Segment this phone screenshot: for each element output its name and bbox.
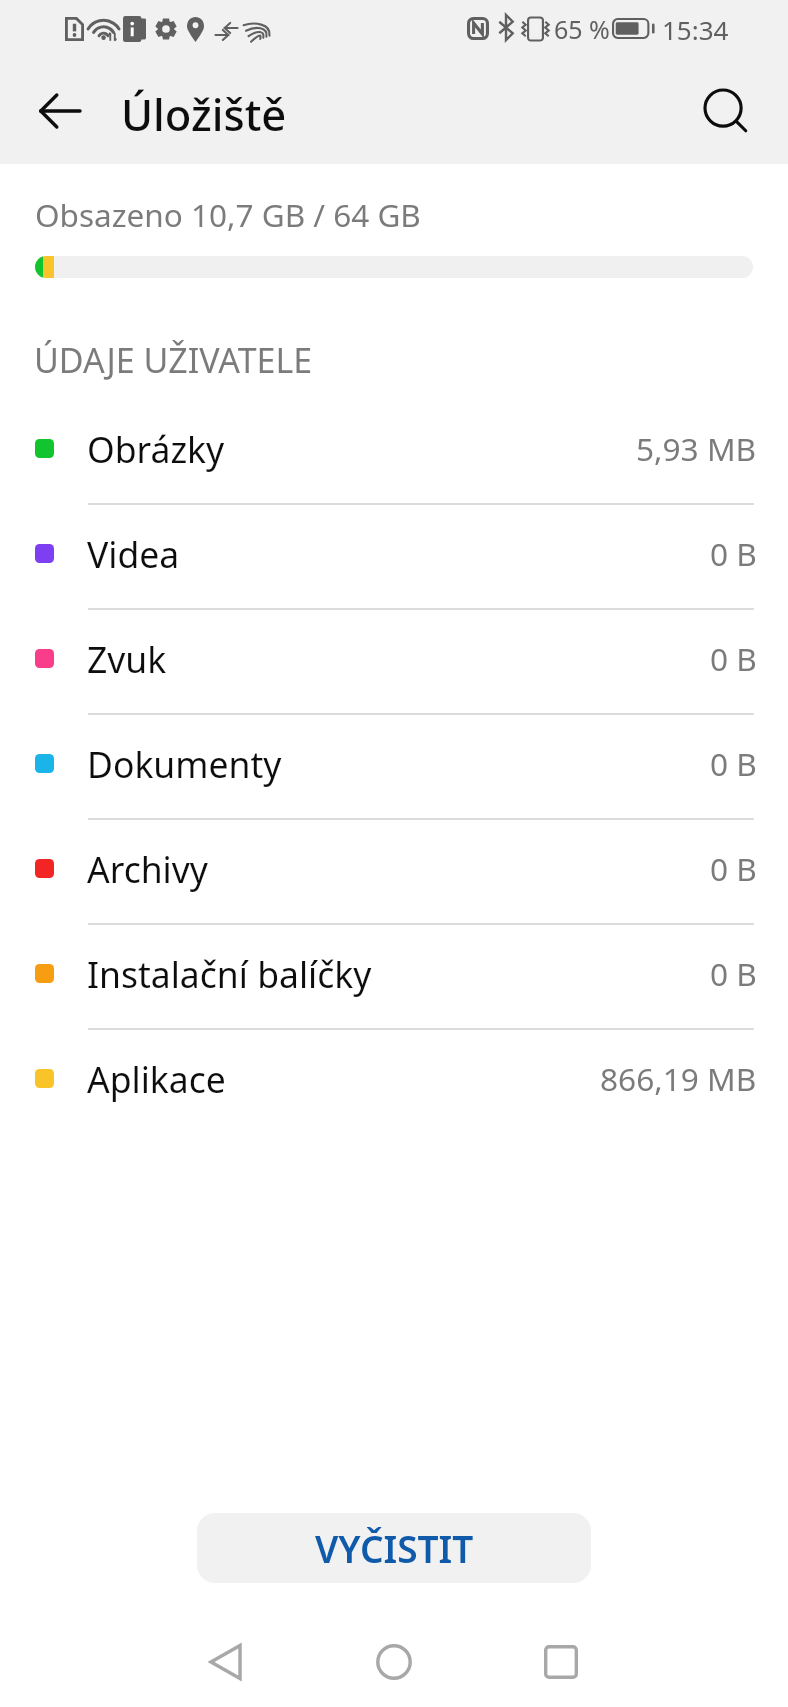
staticText: ÚDAJE UŽIVATELE [34, 337, 313, 383]
staticText: Úložiště [121, 84, 287, 143]
staticText: 0 B [710, 637, 757, 680]
staticText: 0 B [710, 532, 757, 575]
button[interactable]: Archivy [0, 816, 788, 921]
staticText: 5,93 MB [636, 427, 757, 470]
staticText: Archivy [87, 845, 208, 893]
staticText: 15:34 [662, 12, 729, 47]
staticText: Aplikace [87, 1055, 226, 1103]
button[interactable]: Recents [511, 1622, 611, 1702]
button[interactable]: Back [175, 1622, 275, 1702]
staticText: Instalační balíčky [87, 950, 372, 998]
button[interactable]: VYČISTIT [197, 1513, 591, 1583]
staticText: 0 B [710, 847, 757, 890]
staticText: 0 B [710, 952, 757, 995]
staticText: 0 B [710, 742, 757, 785]
button[interactable]: Instalační balíčky [0, 921, 788, 1026]
button[interactable]: Dokumenty [0, 711, 788, 816]
staticText: Videa [87, 530, 180, 578]
staticText: VYČISTIT [315, 1523, 474, 1573]
button[interactable]: Zvuk [0, 606, 788, 711]
staticText: Obrázky [87, 425, 225, 473]
button[interactable]: Videa [0, 501, 788, 606]
button[interactable]: Aplikace [0, 1026, 788, 1131]
button[interactable]: Back [10, 61, 110, 161]
button[interactable]: Home [344, 1622, 444, 1702]
staticText: 65 % [554, 12, 610, 46]
staticText: Obsazeno 10,7 GB / 64 GB [35, 193, 421, 236]
button[interactable]: Search [676, 61, 776, 161]
button[interactable]: Obrázky [0, 396, 788, 501]
staticText: Dokumenty [87, 740, 282, 788]
staticText: 866,19 MB [600, 1057, 757, 1100]
staticText: Zvuk [87, 635, 167, 683]
